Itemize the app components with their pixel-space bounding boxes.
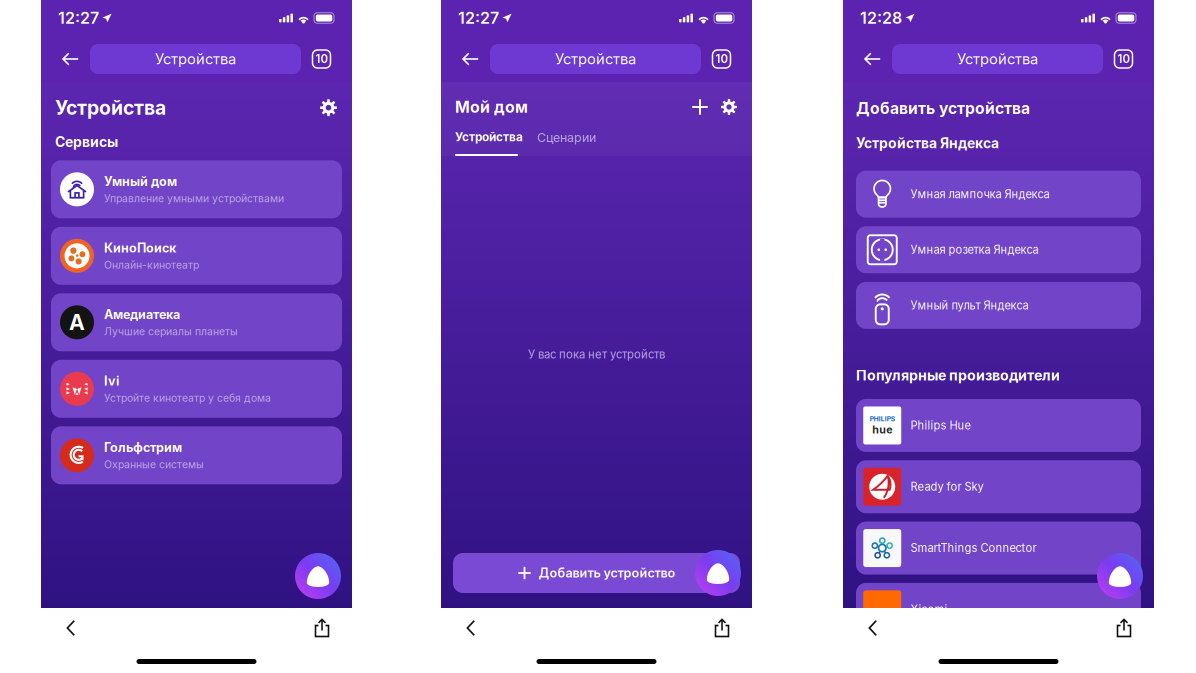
staticText: 12:28 — [860, 8, 902, 28]
staticText: Xiaomi — [910, 603, 947, 616]
staticText: КиноПоиск — [104, 240, 176, 256]
button[interactable]: Ready for Sky — [856, 460, 1141, 513]
staticText: Добавить устройство — [538, 565, 675, 581]
staticText: 10 — [315, 52, 327, 66]
button[interactable]: КиноПоиск — [51, 227, 342, 285]
button[interactable]: Вкладки — [1103, 44, 1144, 74]
staticText: Амедиатека — [104, 307, 180, 322]
button[interactable]: Добавить устройство — [453, 553, 740, 593]
staticText: Умный дом — [104, 174, 177, 189]
staticText: Управление умными устройствами — [104, 192, 284, 205]
staticText: 12:27 — [458, 8, 499, 28]
button[interactable]: SmartThings Connector — [856, 522, 1141, 575]
button[interactable]: Поделиться — [300, 611, 344, 645]
button[interactable]: Назад — [851, 611, 895, 645]
staticText: 10 — [1117, 52, 1129, 66]
button[interactable]: Алиса — [1097, 553, 1143, 599]
button[interactable]: Назад — [451, 44, 490, 74]
button[interactable]: Назад — [853, 44, 892, 74]
staticText: Популярные производители — [856, 367, 1060, 384]
staticText: Устройства — [555, 50, 636, 68]
staticText: Лучшие сериалы планеты — [104, 325, 238, 338]
button[interactable]: Гольфстрим — [51, 426, 342, 484]
staticText: Добавить устройства — [856, 99, 1030, 118]
staticText: 12:27 — [58, 8, 99, 28]
staticText: 10 — [715, 52, 727, 66]
button[interactable]: PHILIPS — [856, 399, 1141, 452]
button[interactable]: Назад — [49, 611, 93, 645]
button[interactable]: Назад — [449, 611, 493, 645]
button[interactable]: Назад — [51, 44, 90, 74]
staticText: Устройте кинотеатр у себя дома — [104, 392, 271, 404]
button[interactable]: Устройства — [90, 44, 301, 74]
button[interactable]: Настройки — [721, 99, 737, 115]
staticText: Устройства — [155, 50, 236, 68]
button[interactable]: Сценарии — [537, 130, 596, 156]
staticText: SmartThings Connector — [910, 541, 1036, 555]
button[interactable]: Умный пульт Яндекса — [856, 282, 1141, 329]
staticText: Сервисы — [55, 133, 118, 150]
staticText: Гольфстрим — [104, 440, 182, 455]
button[interactable]: Поделиться — [700, 611, 744, 645]
button[interactable]: Устройства — [455, 130, 523, 156]
button[interactable]: Устройства — [490, 44, 701, 74]
button[interactable]: Вкладки — [301, 44, 342, 74]
staticText: У вас пока нет устройств — [528, 348, 665, 361]
button[interactable]: Умная лампочка Яндекса — [856, 171, 1141, 218]
staticText: Устройства — [55, 96, 166, 119]
button[interactable]: Ivi — [51, 360, 342, 418]
staticText: Онлайн-кинотеатр — [104, 259, 199, 271]
staticText: Умная лампочка Яндекса — [910, 187, 1049, 201]
staticText: Philips Hue — [910, 419, 970, 432]
staticText: Устройства — [957, 50, 1038, 68]
staticText: hue — [872, 423, 892, 436]
button[interactable]: Алиса — [295, 553, 341, 599]
staticText: A — [69, 309, 85, 335]
staticText: Устройства Яндекса — [856, 135, 999, 152]
staticText: Ivi — [104, 373, 119, 389]
staticText: Сценарии — [537, 130, 596, 145]
button[interactable]: Умный дом — [51, 160, 342, 218]
staticText: Охранные системы — [104, 458, 204, 471]
button[interactable]: Добавить — [689, 96, 711, 118]
button[interactable]: Настройки — [320, 99, 337, 116]
button[interactable]: Вкладки — [701, 44, 742, 74]
staticText: Ready for Sky — [910, 480, 983, 493]
button[interactable]: Поделиться — [1102, 611, 1146, 645]
button[interactable]: Устройства — [892, 44, 1103, 74]
button[interactable]: A — [51, 293, 342, 351]
staticText: Устройства — [455, 130, 523, 144]
staticText: Умная розетка Яндекса — [910, 243, 1038, 256]
staticText: Мой дом — [455, 97, 528, 117]
button[interactable]: Умная розетка Яндекса — [856, 226, 1141, 273]
button[interactable]: Алиса — [695, 550, 741, 596]
button[interactable]: Xiaomi — [856, 583, 1141, 636]
staticText: PHILIPS — [870, 415, 895, 423]
staticText: Умный пульт Яндекса — [910, 299, 1028, 312]
